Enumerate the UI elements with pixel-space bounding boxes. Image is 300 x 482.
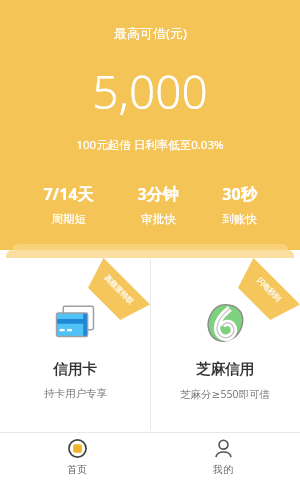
button[interactable]: 芝麻信用 (150, 258, 300, 432)
staticText: 审批快 (141, 212, 176, 226)
other: 我的 (214, 439, 233, 458)
staticText: 周期短 (51, 212, 86, 226)
staticText: 7/14天 (43, 183, 94, 205)
button[interactable]: 首页 (7, 432, 147, 482)
staticText: 30秒 (222, 183, 257, 205)
staticText: 最高可借(元) (114, 24, 187, 42)
staticText: 3分钟 (137, 183, 179, 205)
staticText: 高额度特权 (102, 273, 136, 306)
button[interactable]: 信用卡 (0, 258, 150, 432)
staticText: 芝麻信用 (196, 360, 254, 378)
staticText: 5,000 (92, 60, 208, 123)
staticText: 信用卡 (53, 360, 97, 378)
staticText: 芝麻分≥550即可借 (180, 387, 270, 401)
staticText: 到账快 (222, 212, 257, 226)
staticText: 100元起借 日利率低至0.03% (76, 137, 224, 153)
staticText: 持卡用户专享 (44, 387, 107, 400)
other: 首页 (68, 439, 87, 458)
other: 信用卡 (54, 302, 96, 344)
other: 芝麻信用 (205, 303, 245, 343)
staticText: 闪电秒到 (255, 276, 283, 303)
staticText: 我的 (213, 463, 233, 476)
button[interactable]: 我的 (153, 432, 293, 482)
staticText: 首页 (67, 463, 87, 476)
